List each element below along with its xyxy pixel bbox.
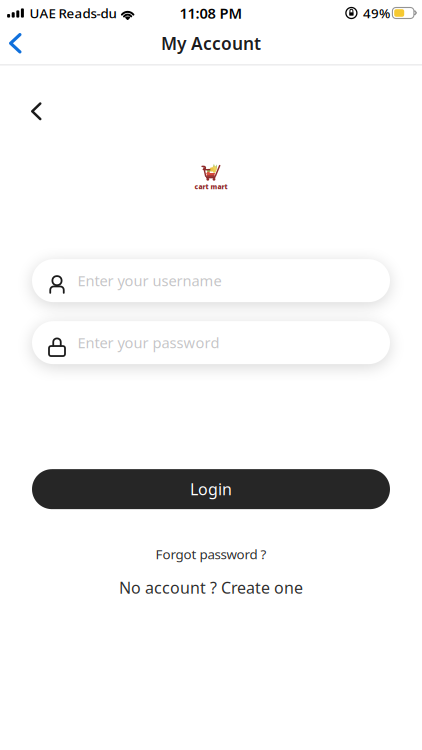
- button[interactable]: No account ? Create one: [119, 577, 303, 598]
- staticText: Forgot password ?: [155, 545, 266, 563]
- staticText: My Account: [161, 32, 261, 55]
- button[interactable]: Back: [0, 28, 35, 62]
- staticText: No account ? Create one: [119, 577, 303, 598]
- staticText: Enter your username: [77, 271, 221, 290]
- staticText: UAE Reads-du: [29, 4, 116, 22]
- button[interactable]: Login: [32, 469, 390, 509]
- staticText: 11:08 PM: [179, 3, 242, 23]
- staticText: Login: [190, 478, 232, 500]
- staticText: 49%: [363, 4, 390, 22]
- staticText: Enter your password: [77, 333, 219, 352]
- staticText: cart mart: [194, 182, 227, 191]
- button[interactable]: Forgot password ?: [155, 545, 266, 563]
- button[interactable]: Back: [26, 93, 55, 129]
